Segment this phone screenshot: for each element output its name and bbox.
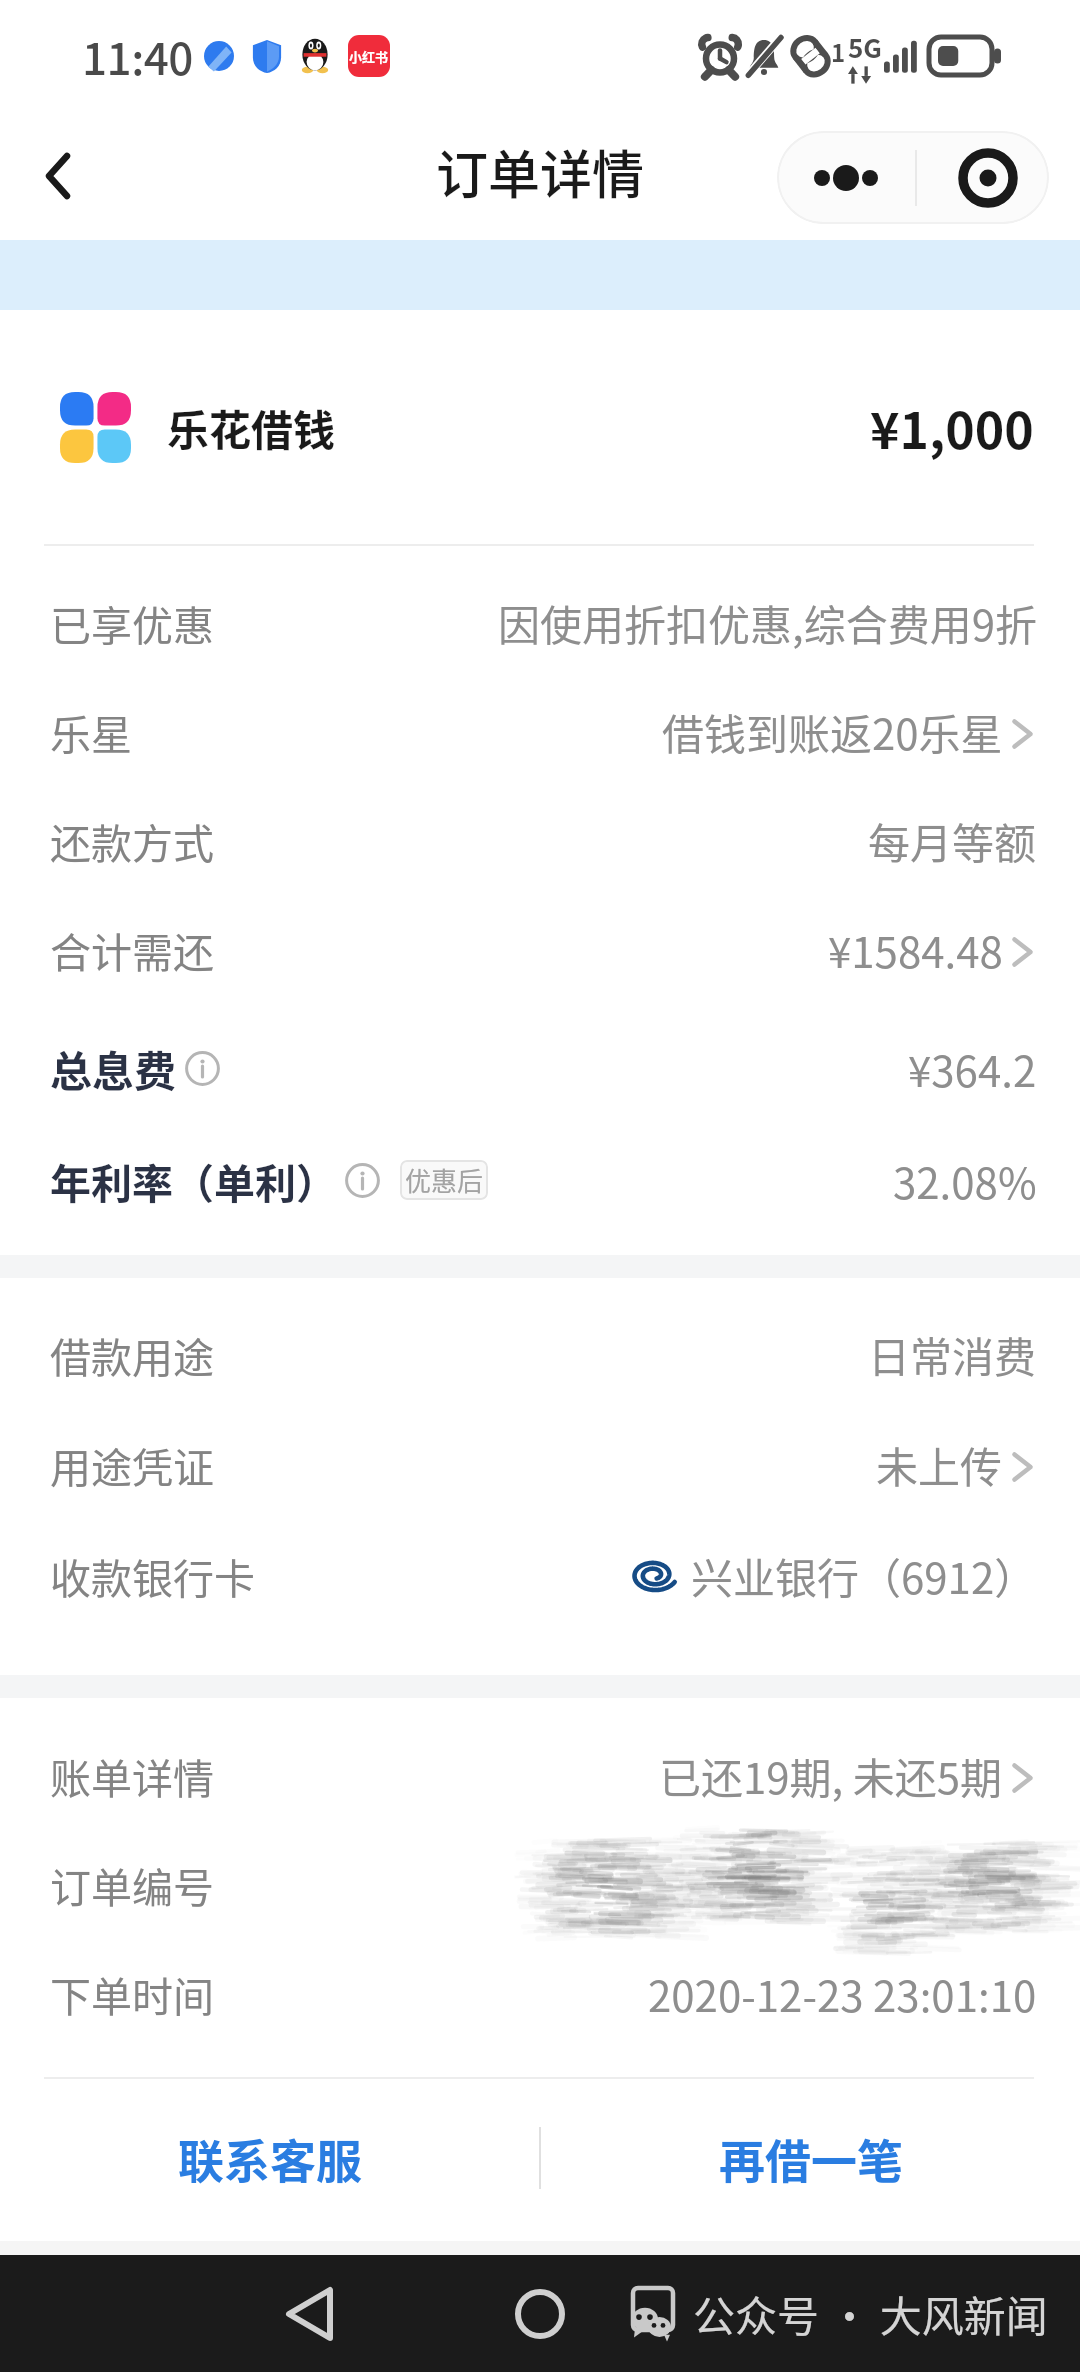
staticText: 收款银行卡	[50, 1546, 255, 1605]
button[interactable]: 年利率（单利）	[0, 1125, 1080, 1235]
button[interactable]: Home	[502, 2276, 578, 2352]
staticText: 1	[831, 34, 846, 69]
button[interactable]: More options	[777, 131, 915, 224]
button[interactable]: 收款银行卡	[0, 1520, 1080, 1630]
staticText: 已还19期, 未还5期	[659, 1745, 1003, 1806]
button[interactable]: Back	[0, 133, 116, 219]
staticText: 借款用途	[50, 1325, 214, 1384]
staticText: 未上传	[876, 1434, 1003, 1495]
staticText: 乐星	[50, 702, 132, 761]
staticText: 5G	[848, 28, 882, 66]
staticText: 总息费	[50, 1038, 177, 1099]
button[interactable]: 乐星	[0, 676, 1080, 786]
button[interactable]: 还款方式	[0, 785, 1080, 895]
staticText: 年利率（单利）	[50, 1151, 337, 1210]
staticText: 还款方式	[50, 811, 214, 870]
staticText: 账单详情	[50, 1746, 214, 1805]
staticText: ¥1,000	[870, 391, 1034, 463]
staticText: 11:40	[82, 24, 193, 88]
staticText: 2020-12-23 23:01:10	[648, 1963, 1037, 2024]
staticText: 日常消费	[868, 1324, 1037, 1385]
staticText: 订单详情	[436, 134, 645, 209]
staticText: 联系客服	[178, 2125, 362, 2192]
staticText: 用途凭证	[50, 1435, 214, 1494]
staticText: 合计需还	[50, 920, 214, 979]
staticText: 已享优惠	[50, 593, 214, 652]
button[interactable]: Close mini program	[917, 131, 1049, 224]
button[interactable]: 借款用途	[0, 1299, 1080, 1409]
button[interactable]: 已享优惠	[0, 567, 1080, 677]
staticText: 公众号 · 大风新闻	[693, 2283, 1048, 2344]
staticText: ¥364.2	[908, 1038, 1037, 1099]
staticText: 优惠后	[405, 1161, 484, 1199]
staticText: 借钱到账返20乐星	[662, 701, 1003, 762]
staticText: 订单编号	[50, 1855, 214, 1914]
staticText: 兴业银行（6912）	[691, 1545, 1037, 1606]
staticText: 小红书	[349, 47, 389, 66]
button[interactable]: 用途凭证	[0, 1409, 1080, 1519]
button[interactable]: 订单编号	[0, 1829, 1080, 1939]
staticText: 因使用折扣优惠,综合费用9折	[498, 592, 1037, 653]
button[interactable]: Back	[272, 2276, 348, 2352]
button[interactable]: 下单时间	[0, 1938, 1080, 2048]
button[interactable]: 账单详情	[0, 1720, 1080, 1830]
staticText: ¥1584.48	[828, 919, 1003, 980]
staticText: 每月等额	[868, 810, 1037, 871]
button[interactable]: 联系客服	[0, 2095, 539, 2221]
staticText: 32.08%	[893, 1150, 1037, 1211]
button[interactable]: 再借一笔	[541, 2095, 1080, 2221]
staticText: 下单时间	[50, 1964, 214, 2023]
staticText: 乐花借钱	[167, 397, 336, 458]
button[interactable]: 合计需还	[0, 894, 1080, 1004]
staticText: 再借一笔	[719, 2125, 903, 2192]
button[interactable]: 总息费	[0, 1013, 1080, 1123]
